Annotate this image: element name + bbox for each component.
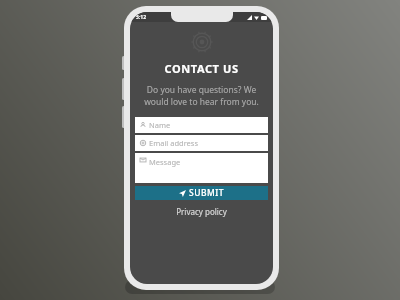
staticText: 5:12 xyxy=(136,14,146,21)
button[interactable]: Privacy policy xyxy=(135,206,268,217)
staticText: Do you have questions? We would love to … xyxy=(138,84,265,108)
button[interactable]: SUBMIT xyxy=(135,186,268,200)
staticText: SUBMIT xyxy=(189,187,225,199)
button[interactable]: Message xyxy=(135,153,268,183)
staticText: CONTACT US xyxy=(130,61,273,76)
staticText: Email address xyxy=(149,138,199,148)
button[interactable]: Email address xyxy=(135,135,268,151)
staticText: Name xyxy=(149,120,171,130)
staticText: Message xyxy=(149,157,181,167)
button[interactable]: Name xyxy=(135,117,268,133)
